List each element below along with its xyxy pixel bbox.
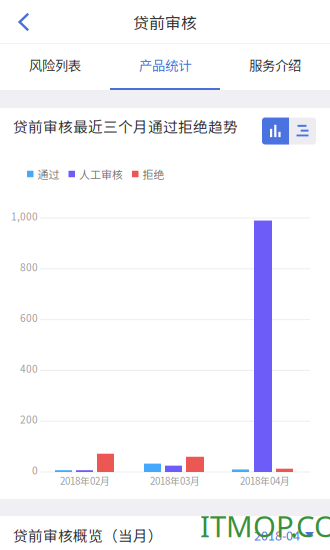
- staticText: 2018年02月: [60, 473, 110, 488]
- staticText: 贷前审核概览（当月）: [13, 524, 163, 546]
- button[interactable]: 产品统计: [110, 44, 220, 90]
- staticText: 拒绝: [142, 166, 164, 182]
- staticText: 400: [20, 361, 38, 376]
- staticText: 600: [20, 310, 38, 325]
- button[interactable]: List view: [289, 117, 316, 144]
- staticText: 2018年04月: [240, 473, 290, 488]
- staticText: 1,000: [11, 209, 38, 223]
- staticText: ITMOP.COM: [200, 506, 330, 546]
- staticText: 贷前审核: [133, 10, 197, 34]
- staticText: 贷前审核最近三个月通过拒绝趋势: [13, 115, 238, 137]
- staticText: 2018年03月: [150, 473, 200, 488]
- staticText: 人工审核: [79, 166, 123, 182]
- staticText: 0: [32, 463, 38, 477]
- staticText: 服务介绍: [249, 55, 301, 75]
- button[interactable]: 2018-04: [252, 519, 316, 550]
- staticText: 通过: [37, 166, 59, 182]
- button[interactable]: 服务介绍: [220, 44, 330, 90]
- button[interactable]: 风险列表: [0, 44, 110, 90]
- staticText: 风险列表: [29, 55, 81, 75]
- staticText: 800: [20, 259, 38, 274]
- staticText: 200: [20, 412, 38, 427]
- button[interactable]: Chart view: [262, 117, 289, 144]
- button[interactable]: Back: [0, 0, 48, 44]
- staticText: 2018-04: [254, 526, 300, 544]
- staticText: 产品统计: [139, 55, 191, 75]
